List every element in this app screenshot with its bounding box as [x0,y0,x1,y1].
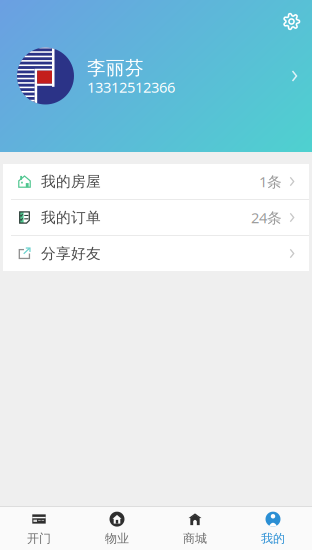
staticText: 我的 [261,531,285,546]
button[interactable]: 我的房屋 [3,164,309,199]
button[interactable]: 我的 [234,507,312,550]
staticText: 商城 [183,531,207,546]
button[interactable]: Settings [276,6,307,37]
button[interactable]: 开门 [0,507,78,550]
staticText: 李丽芬 [87,56,144,79]
staticText: 分享好友 [41,244,101,262]
button[interactable]: 分享好友 [3,236,309,271]
button[interactable]: 我的订单 [3,200,309,235]
staticText: 24条 [251,208,282,227]
staticText: 我的房屋 [41,172,101,190]
staticText: 13312512366 [87,77,175,97]
staticText: 我的订单 [41,208,101,226]
button[interactable]: 物业 [78,507,156,550]
staticText: 物业 [105,531,129,546]
button[interactable]: 商城 [156,507,234,550]
button[interactable]: 李丽芬 [0,47,312,104]
staticText: 开门 [27,531,51,546]
staticText: 1条 [259,172,282,191]
